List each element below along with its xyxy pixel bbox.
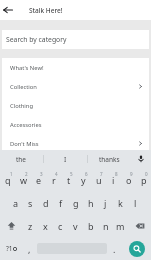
button[interactable]: Search by category [2, 30, 149, 49]
staticText: j [104, 197, 107, 209]
button[interactable] [83, 191, 98, 214]
staticText: Stalk Here! [29, 6, 63, 15]
staticText: , [28, 243, 31, 255]
button[interactable] [107, 237, 122, 260]
staticText: What's New! [10, 64, 44, 72]
staticText: y [81, 174, 86, 186]
staticText: 9 [130, 171, 133, 177]
button[interactable]: Clothing [2, 96, 149, 115]
button[interactable]: Shift [0, 214, 23, 237]
button[interactable]: Search [122, 237, 151, 260]
staticText: i [112, 174, 115, 186]
button[interactable] [136, 168, 151, 191]
button[interactable] [53, 214, 68, 237]
staticText: x [43, 220, 48, 232]
staticText: 8 [115, 171, 118, 177]
staticText: v [73, 220, 78, 232]
button[interactable]: Voice input [131, 150, 151, 168]
staticText: ?1 [6, 244, 13, 253]
staticText: Accessories [10, 121, 42, 129]
staticText: 2 [25, 171, 28, 177]
staticText: q [5, 174, 11, 186]
staticText: f [59, 197, 63, 209]
staticText: Don't Miss [10, 140, 39, 148]
staticText: thanks [99, 155, 120, 164]
button[interactable] [76, 168, 91, 191]
button[interactable] [83, 214, 98, 237]
button[interactable]: ?1 [0, 237, 22, 260]
staticText: h [88, 197, 94, 209]
button[interactable] [98, 214, 113, 237]
staticText: k [118, 197, 123, 209]
button[interactable] [113, 191, 128, 214]
button[interactable]: thanks [88, 150, 131, 168]
staticText: n [103, 220, 109, 232]
button[interactable] [121, 168, 136, 191]
button[interactable]: Collection [2, 77, 149, 96]
staticText: e [36, 174, 42, 186]
button[interactable]: Space [37, 237, 107, 260]
button[interactable] [68, 214, 83, 237]
staticText: l [134, 197, 137, 209]
button[interactable] [68, 191, 83, 214]
button[interactable] [98, 191, 113, 214]
staticText: m [116, 220, 125, 232]
staticText: Collection [10, 83, 37, 91]
button[interactable] [0, 168, 16, 191]
staticText: . [113, 243, 116, 255]
staticText: 0 [145, 171, 148, 177]
staticText: c [58, 220, 63, 232]
staticText: s [28, 197, 33, 209]
button[interactable]: Backspace [128, 214, 151, 237]
staticText: I [64, 155, 67, 164]
button[interactable] [38, 191, 53, 214]
button[interactable] [53, 191, 68, 214]
button[interactable] [38, 214, 53, 237]
staticText: b [88, 220, 94, 232]
button[interactable] [113, 214, 128, 237]
staticText: 3 [40, 171, 43, 177]
button[interactable] [61, 168, 76, 191]
button[interactable]: I [44, 150, 87, 168]
button[interactable] [23, 214, 38, 237]
staticText: the [16, 155, 27, 164]
button[interactable] [31, 168, 46, 191]
button[interactable] [8, 191, 23, 214]
staticText: t [67, 174, 71, 186]
staticText: 6 [85, 171, 88, 177]
staticText: d [43, 197, 49, 209]
button[interactable]: the [0, 150, 43, 168]
staticText: g [73, 197, 79, 209]
staticText: Search by category [6, 35, 67, 44]
staticText: w [20, 174, 28, 186]
button[interactable] [106, 168, 121, 191]
button[interactable] [23, 191, 38, 214]
staticText: 7 [100, 171, 103, 177]
button[interactable] [16, 168, 31, 191]
staticText: p [141, 174, 147, 186]
staticText: o [126, 174, 132, 186]
staticText: 5 [70, 171, 73, 177]
staticText: 1 [10, 171, 13, 177]
button[interactable]: What's New! [2, 58, 149, 77]
staticText: r [52, 174, 56, 186]
staticText: a [13, 197, 19, 209]
staticText: z [28, 220, 33, 232]
staticText: 4 [55, 171, 58, 177]
button[interactable] [46, 168, 61, 191]
staticText: u [96, 174, 102, 186]
button[interactable] [91, 168, 106, 191]
button[interactable]: Accessories [2, 115, 149, 134]
button[interactable]: Don't Miss [2, 134, 149, 153]
button[interactable] [22, 237, 37, 260]
button[interactable] [128, 191, 143, 214]
button[interactable]: Back [0, 2, 16, 18]
staticText: Clothing [10, 102, 33, 110]
